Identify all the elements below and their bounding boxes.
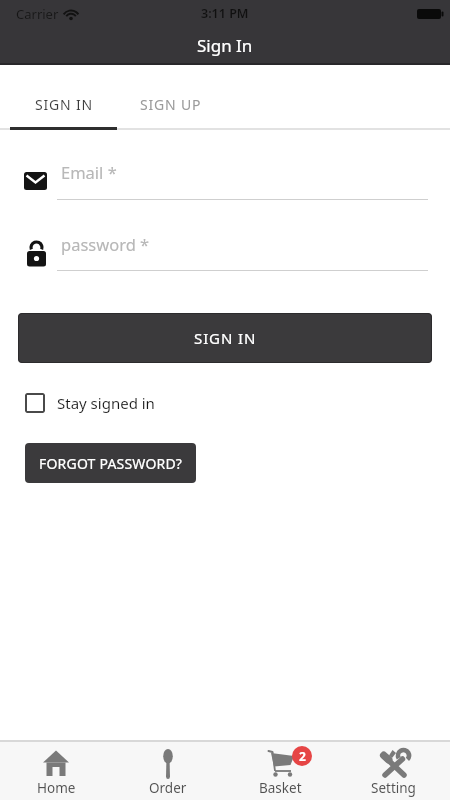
staticText: password * <box>61 233 150 255</box>
button[interactable]: Setting <box>337 742 450 800</box>
button[interactable]: Home <box>0 742 112 800</box>
button[interactable]: 2 <box>224 742 337 800</box>
button[interactable]: Stay signed in <box>25 392 155 413</box>
staticText: Home <box>37 779 76 797</box>
staticText: SIGN IN <box>35 95 93 114</box>
staticText: Setting <box>371 779 416 797</box>
staticText: FORGOT PASSWORD? <box>39 454 183 473</box>
button[interactable]: SIGN IN <box>18 313 432 363</box>
staticText: Email * <box>61 161 117 183</box>
staticText: 2 <box>299 748 306 764</box>
staticText: SIGN IN <box>194 328 257 348</box>
staticText: Order <box>149 779 187 797</box>
staticText: SIGN UP <box>140 95 202 114</box>
staticText: Sign In <box>197 34 253 57</box>
button[interactable]: SIGN UP <box>117 79 224 130</box>
staticText: Basket <box>259 779 302 797</box>
staticText: Stay signed in <box>57 393 155 413</box>
staticText: Carrier <box>16 5 59 23</box>
button[interactable]: FORGOT PASSWORD? <box>25 443 196 483</box>
button[interactable]: Order <box>112 742 224 800</box>
staticText: 3:11 PM <box>201 5 249 22</box>
button[interactable]: SIGN IN <box>10 79 117 130</box>
